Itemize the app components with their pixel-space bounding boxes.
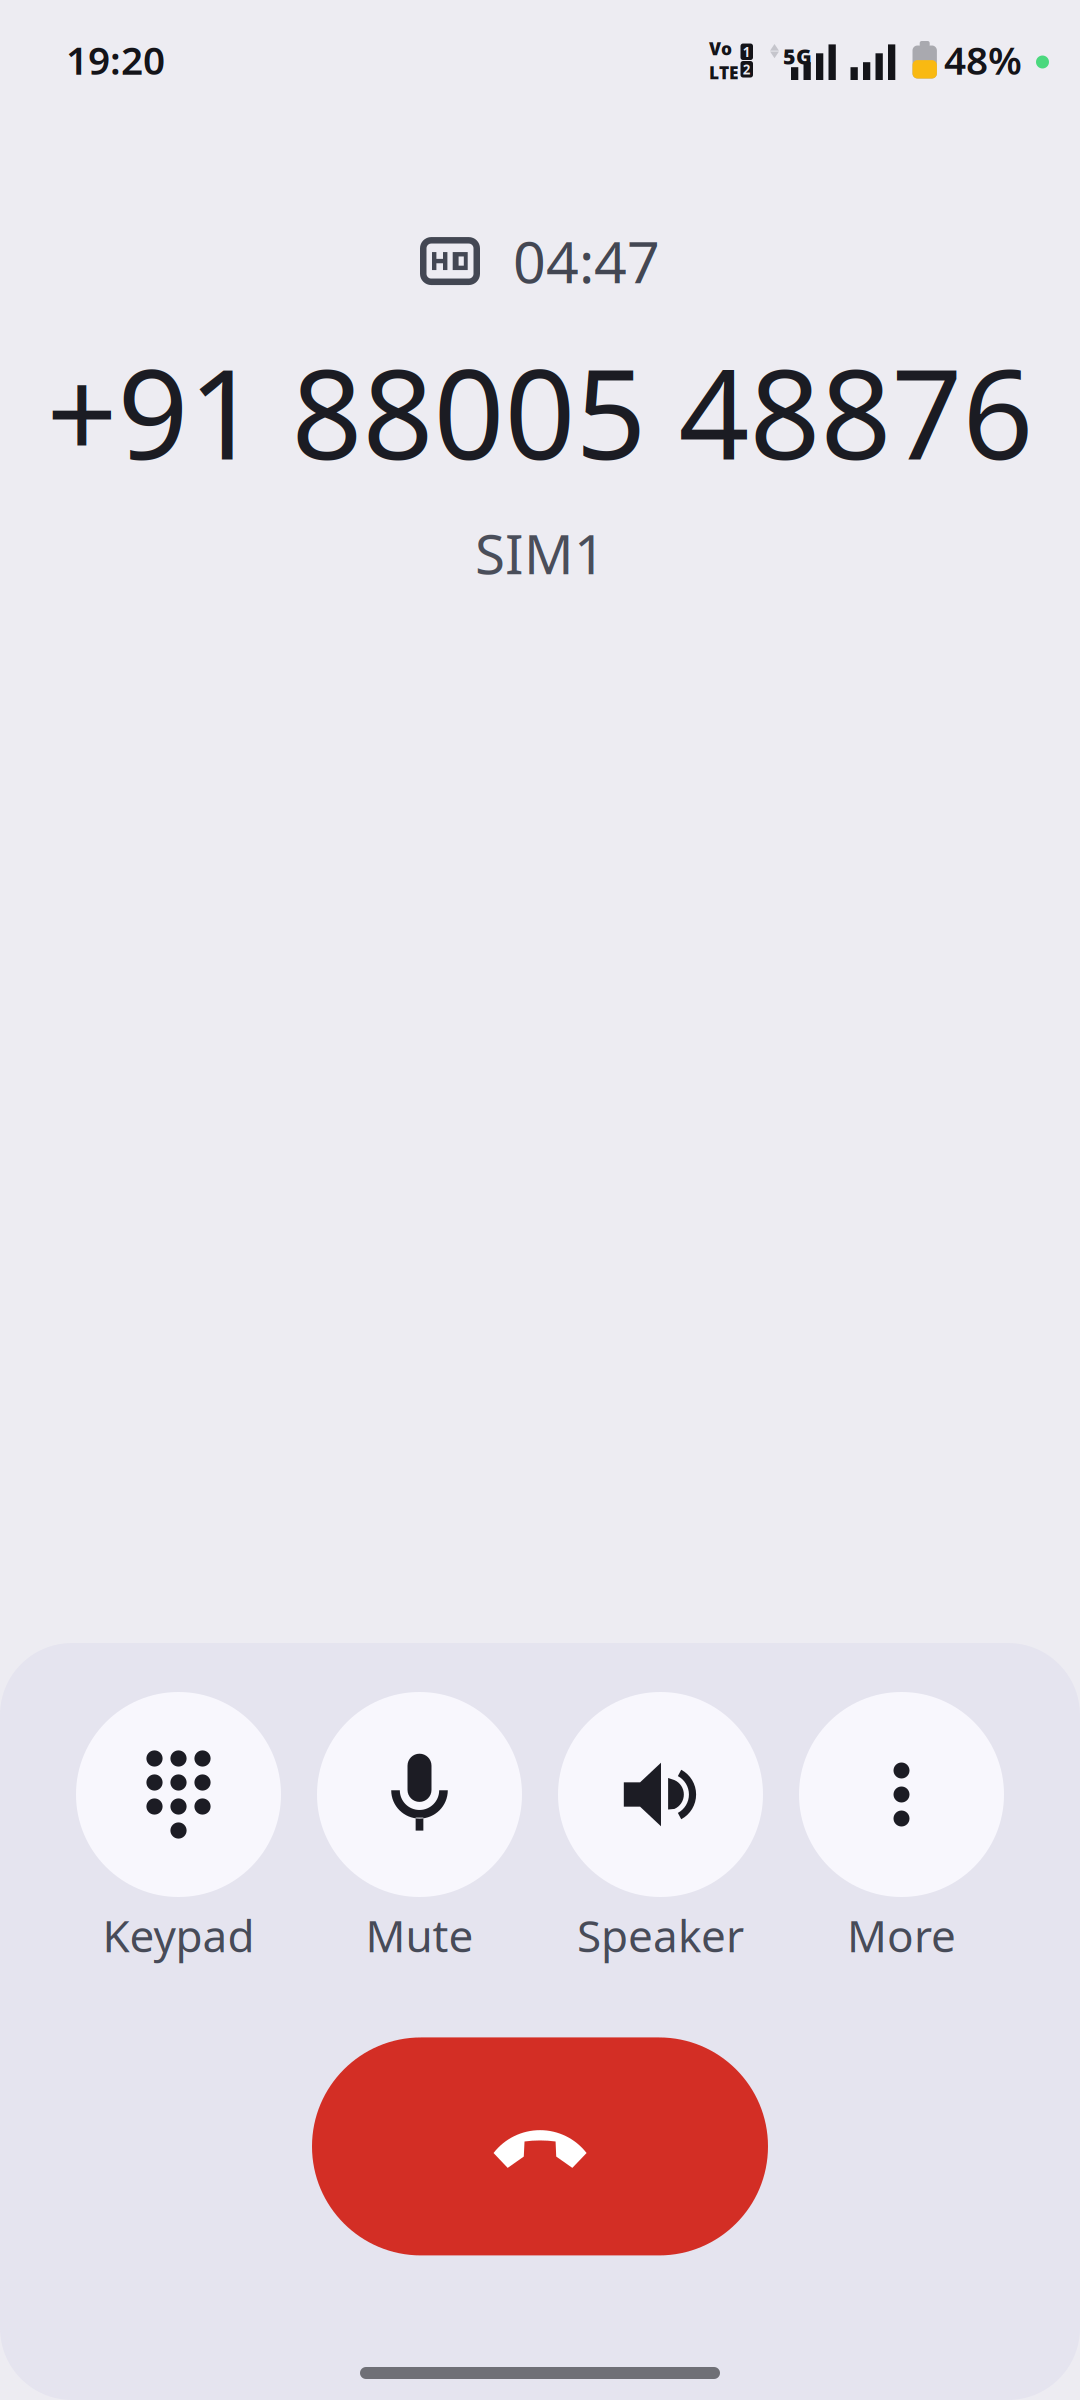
staticText: Speaker — [577, 1906, 744, 1964]
button[interactable]: More — [799, 1692, 1004, 1964]
staticText: +91 88005 48876 — [46, 329, 1033, 494]
staticText: 48% — [944, 34, 1022, 85]
staticText: Vo — [709, 37, 732, 60]
staticText: 1 — [743, 43, 751, 61]
staticText: 04:47 — [513, 223, 660, 299]
button[interactable]: Keypad — [76, 1692, 281, 1964]
staticText: Keypad — [102, 1906, 254, 1964]
staticText: 19:20 — [66, 34, 165, 85]
staticText: 5G — [783, 42, 812, 70]
staticText: LTE — [709, 61, 739, 84]
button[interactable]: End call — [312, 2037, 768, 2255]
staticText: More — [847, 1906, 956, 1964]
button[interactable]: Speaker — [558, 1692, 763, 1964]
staticText: 2 — [743, 60, 751, 78]
staticText: Mute — [365, 1906, 473, 1964]
button[interactable]: Mute — [317, 1692, 522, 1964]
staticText: SIM1 — [475, 517, 605, 589]
